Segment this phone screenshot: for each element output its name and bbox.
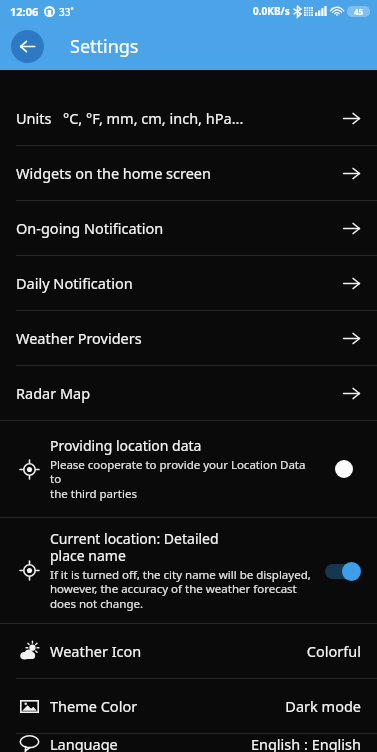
staticText: 45 [354,6,364,17]
staticText: Dark mode [285,696,361,716]
staticText: Weather Providers [16,328,142,348]
button[interactable]: Off [325,459,361,479]
staticText: 0.0KB/s [253,4,290,18]
staticText: °C, °F, mm, cm, inch, hPa... [63,108,244,128]
staticText: Theme Color [50,696,138,716]
staticText: 12:06 [10,4,39,19]
other: Open [342,384,361,403]
staticText: Daily Notification [16,273,133,293]
button[interactable]: Theme color [0,679,377,733]
staticText: Radar Map [16,383,91,403]
staticText: On-going Notification [16,218,164,238]
other: Location [20,561,39,580]
button[interactable]: Widgets on the home screen [0,146,377,200]
button[interactable]: Daily Notification [0,256,377,310]
other: Language [19,734,40,752]
staticText: Weather Icon [50,641,142,661]
other: Open [342,164,361,183]
button[interactable]: Weather Providers [0,311,377,365]
staticText: Providing location data [50,436,202,455]
staticText: Please cooperate to provide your Locatio… [50,457,317,502]
other: Location [20,460,39,479]
other: Open [342,219,361,238]
staticText: Widgets on the home screen [16,163,211,183]
other: Weather icon style [19,641,40,662]
button[interactable]: Units [0,91,377,145]
button[interactable]: Location [0,518,377,623]
staticText: English : English [250,734,361,752]
staticText: Settings [70,34,139,59]
button[interactable]: Language [0,734,377,752]
button[interactable]: On-going Notification [0,201,377,255]
other: Theme color [20,697,39,716]
other: Open [342,329,361,348]
button[interactable]: Location [0,421,377,517]
staticText: Colorful [306,641,361,661]
button[interactable]: Weather icon style [0,624,377,678]
other: Open [342,109,361,128]
button[interactable]: Radar Map [0,366,377,420]
button[interactable]: On [325,561,361,581]
staticText: If it is turned off, the city name will … [50,567,311,612]
other: Open [342,274,361,293]
button[interactable]: Back [11,30,44,63]
staticText: 33˚ [59,5,74,19]
staticText: Language [50,734,118,752]
staticText: Current location: Detailed place name [50,529,219,565]
staticText: Units [16,108,52,128]
